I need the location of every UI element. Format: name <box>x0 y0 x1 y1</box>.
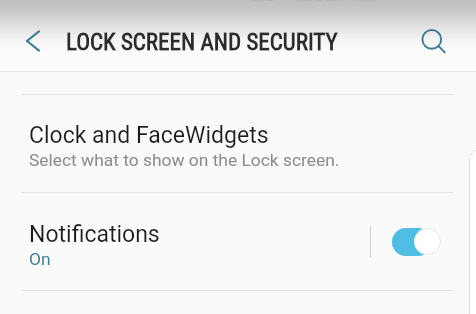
button[interactable]: Notifications <box>0 193 476 290</box>
staticText: Clock and FaceWidgets <box>29 122 269 149</box>
button[interactable]: Notifications on <box>392 228 441 256</box>
staticText: Select what to show on the Lock screen. <box>29 150 340 170</box>
staticText: LOCK SCREEN AND SECURITY <box>66 29 338 56</box>
staticText: Notifications <box>29 221 160 248</box>
button[interactable]: Navigate up <box>11 19 55 63</box>
staticText: On <box>29 249 51 269</box>
button[interactable]: Search <box>413 21 457 65</box>
button[interactable]: Clock and FaceWidgets <box>0 95 476 192</box>
